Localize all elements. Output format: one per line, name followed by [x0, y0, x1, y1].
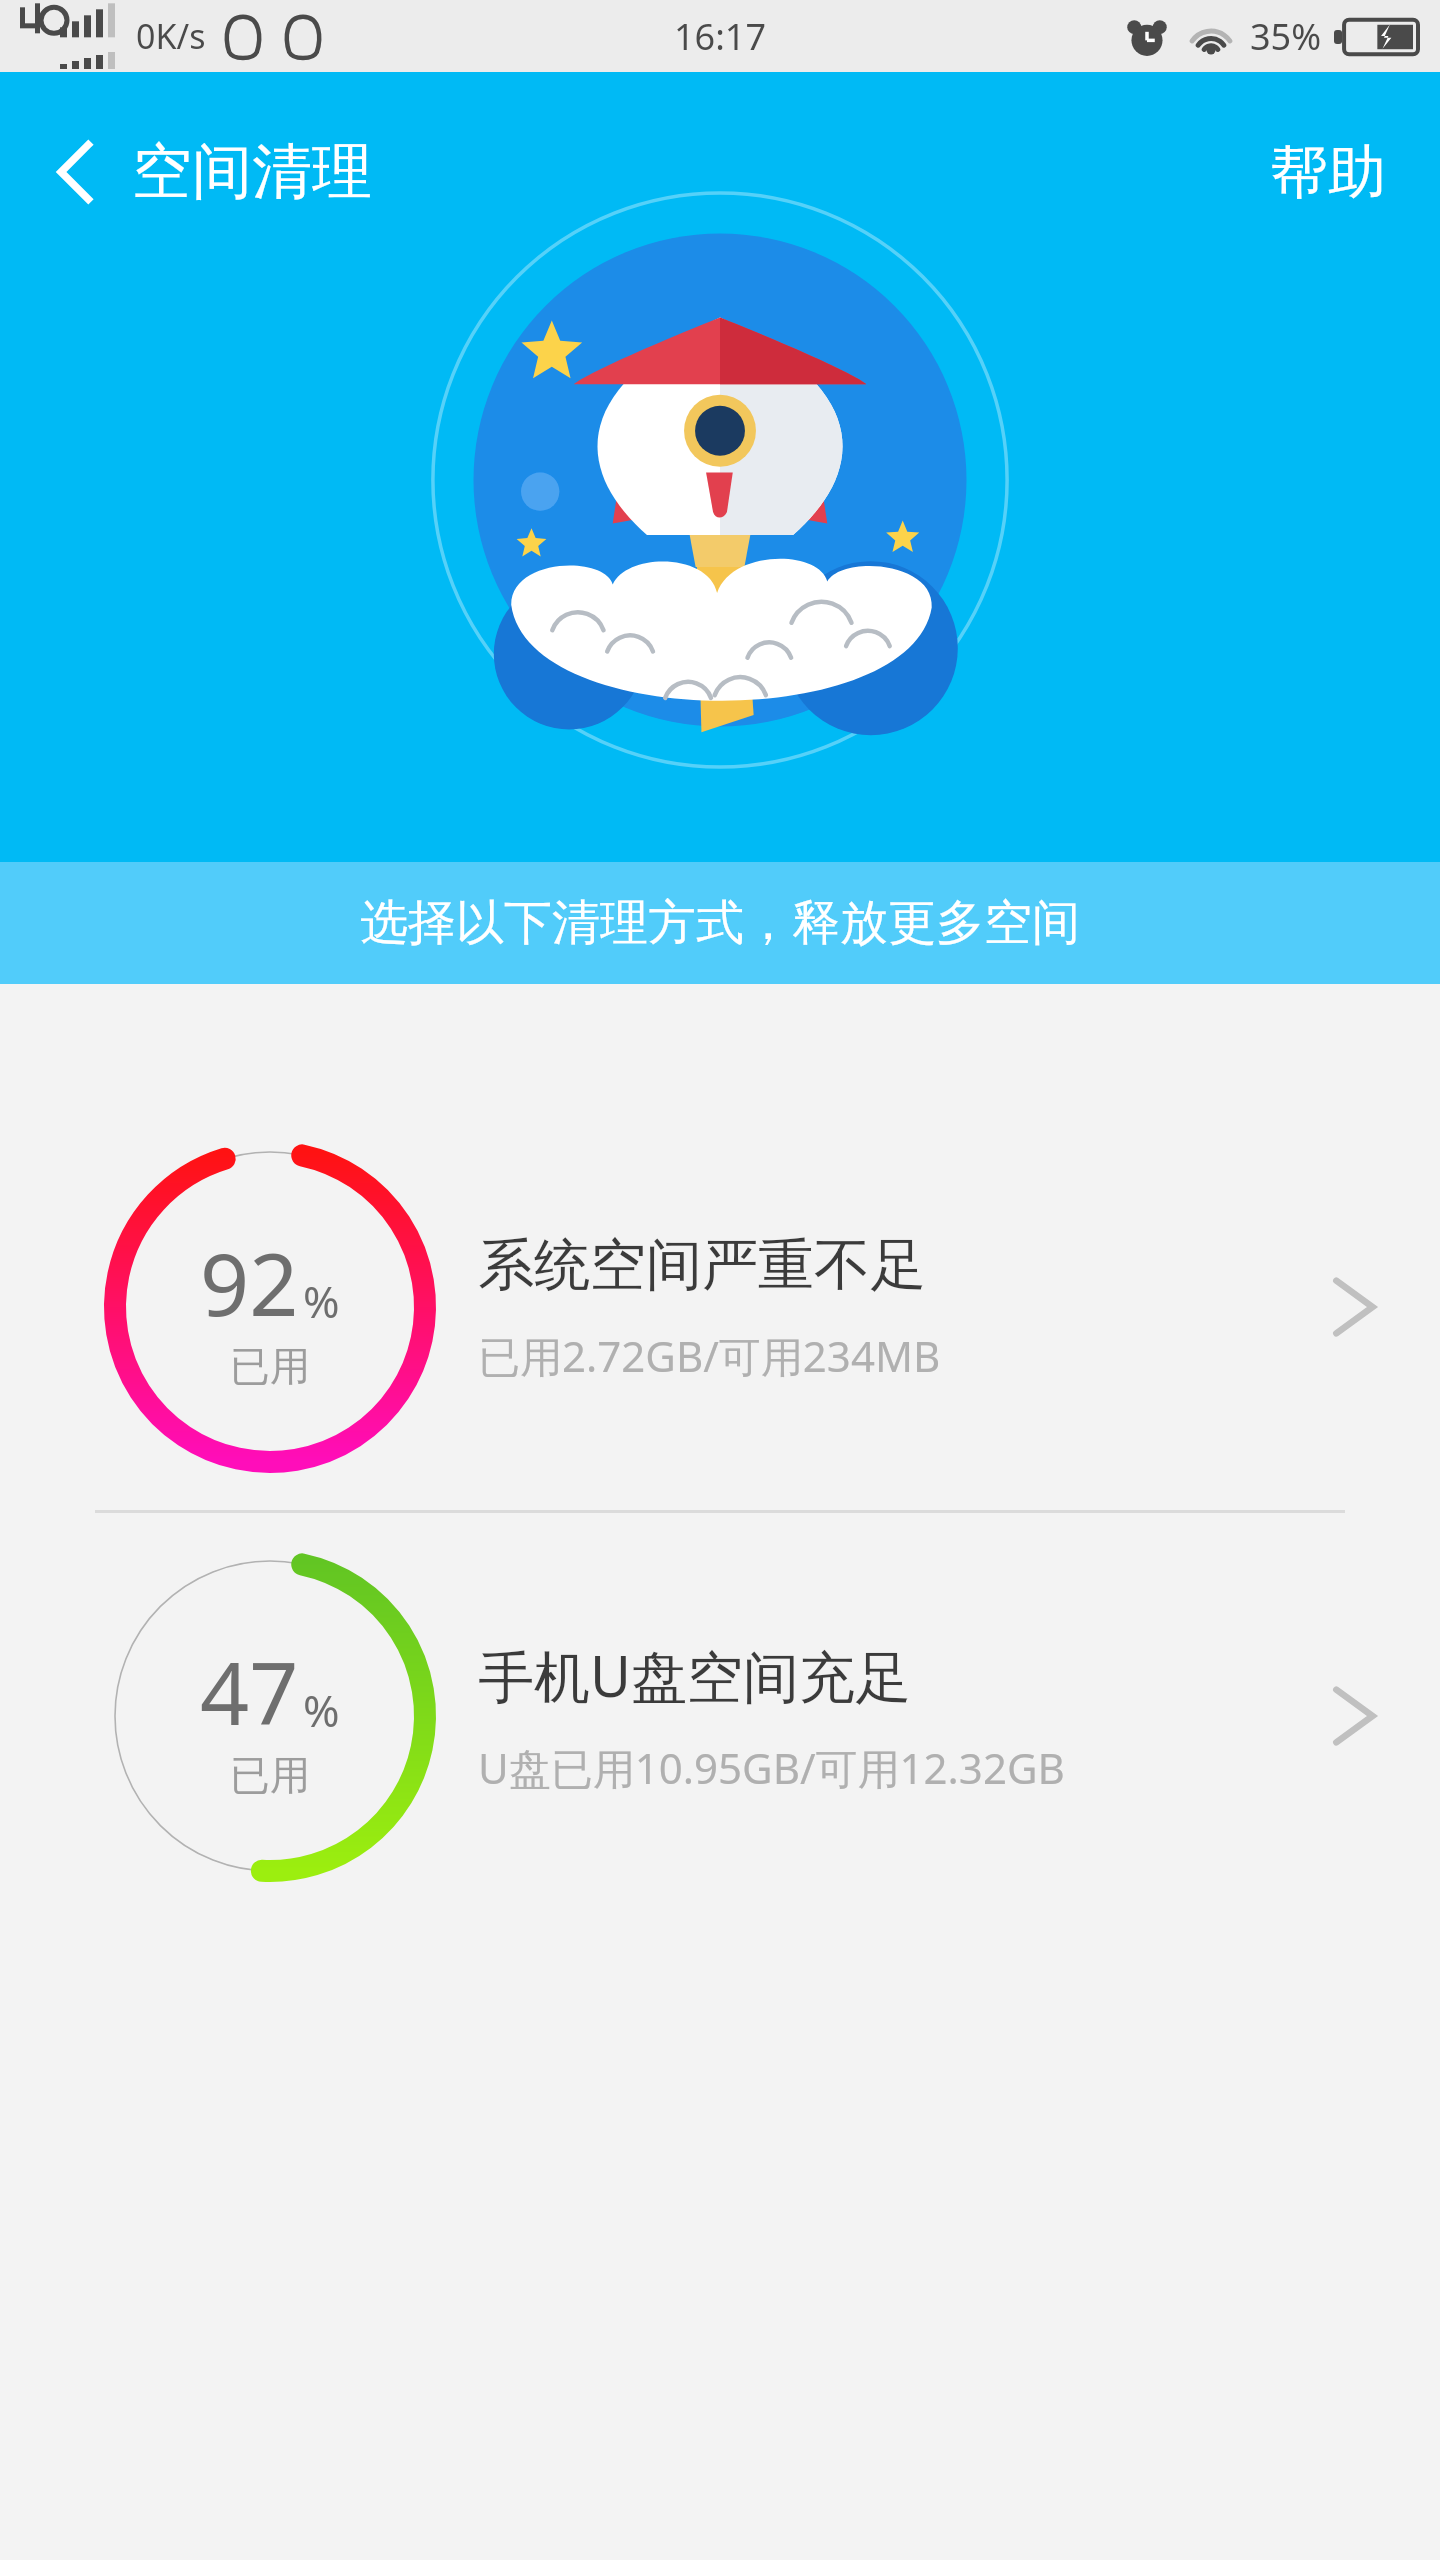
- staticText: 手机U盘空间充足: [478, 1637, 911, 1713]
- staticText: 47: [200, 1633, 299, 1750]
- staticText: 空间清理: [132, 134, 372, 210]
- staticText: 帮助: [1270, 136, 1386, 209]
- button[interactable]: 帮助: [1256, 126, 1400, 219]
- staticText: 16:17: [674, 12, 767, 61]
- staticText: 已用: [230, 1341, 310, 1391]
- other: Back: [54, 141, 98, 203]
- button[interactable]: Back: [40, 124, 386, 220]
- staticText: 已用: [230, 1750, 310, 1800]
- staticText: U盘已用10.95GB/可用12.32GB: [478, 1739, 1065, 1796]
- button[interactable]: 47: [0, 1541, 1440, 1891]
- staticText: 0K/s: [136, 13, 206, 59]
- staticText: 35%: [1250, 12, 1322, 61]
- staticText: 已用2.72GB/可用234MB: [478, 1327, 941, 1384]
- other: Open details: [1300, 1661, 1410, 1771]
- staticText: 92: [200, 1224, 299, 1341]
- staticText: %: [303, 1680, 340, 1740]
- staticText: 选择以下清理方式，释放更多空间: [360, 893, 1080, 953]
- staticText: 系统空间严重不足: [478, 1230, 926, 1301]
- other: Open details: [1300, 1252, 1410, 1362]
- button[interactable]: 92: [0, 1132, 1440, 1482]
- staticText: %: [303, 1271, 340, 1331]
